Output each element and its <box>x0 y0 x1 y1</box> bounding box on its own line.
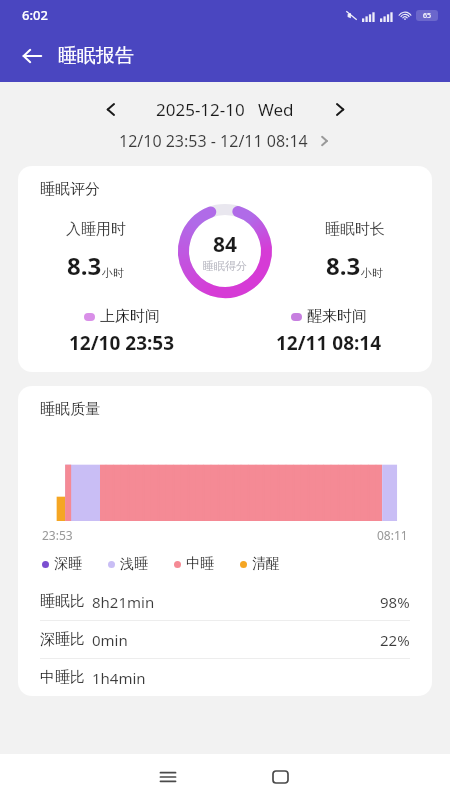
staticText: 12/10 23:53 <box>69 330 175 356</box>
staticText: 睡眠质量 <box>40 400 100 419</box>
staticText: 睡眠报告 <box>58 44 134 68</box>
staticText: 2025-12-10 Wed <box>156 98 294 121</box>
staticText: 23:53 <box>42 527 73 543</box>
staticText: 入睡用时 <box>66 220 126 239</box>
button[interactable]: 清醒 <box>240 555 280 573</box>
staticText: 08:11 <box>377 527 408 543</box>
staticText: 12/11 08:14 <box>276 330 382 356</box>
staticText: 深睡 <box>54 555 82 573</box>
button[interactable]: 中睡比 <box>18 659 432 696</box>
staticText: 深睡比 <box>40 630 85 649</box>
button[interactable]: Home <box>224 754 337 800</box>
button[interactable]: 睡眠比 <box>18 583 432 620</box>
button[interactable]: 深睡 <box>42 555 82 573</box>
staticText: 98% <box>380 592 410 612</box>
staticText: 睡眠比 <box>40 592 85 611</box>
staticText: 6:02 <box>22 6 48 24</box>
staticText: 0min <box>92 630 128 650</box>
staticText: 8h21min <box>92 592 155 612</box>
staticText: 小时 <box>102 266 124 280</box>
staticText: 中睡 <box>186 555 214 573</box>
staticText: 睡眠评分 <box>40 180 100 199</box>
staticText: 睡眠得分 <box>203 259 247 273</box>
button[interactable]: 浅睡 <box>108 555 148 573</box>
staticText: 12/10 23:53 - 12/11 08:14 <box>119 130 308 152</box>
staticText: 65 <box>423 11 432 21</box>
staticText: 8.3 <box>326 249 361 282</box>
staticText: 中睡比 <box>40 668 85 687</box>
button[interactable]: 12/10 23:53 - 12/11 08:14 <box>113 128 338 154</box>
button[interactable]: Back <box>10 34 54 78</box>
button[interactable]: Next day <box>322 92 356 126</box>
staticText: 84 <box>213 230 238 259</box>
staticText: 1h4min <box>92 668 146 688</box>
button[interactable]: Recent apps <box>112 754 224 800</box>
staticText: 8.3 <box>67 249 102 282</box>
button[interactable]: Previous day <box>94 92 128 126</box>
button[interactable]: 深睡比 <box>18 621 432 658</box>
staticText: 醒来时间 <box>307 307 367 326</box>
staticText: 上床时间 <box>100 307 160 326</box>
staticText: 22% <box>380 630 410 650</box>
staticText: 清醒 <box>252 555 280 573</box>
staticText: 睡眠时长 <box>325 220 385 239</box>
button[interactable]: 中睡 <box>174 555 214 573</box>
staticText: 浅睡 <box>120 555 148 573</box>
staticText: 小时 <box>361 266 383 280</box>
